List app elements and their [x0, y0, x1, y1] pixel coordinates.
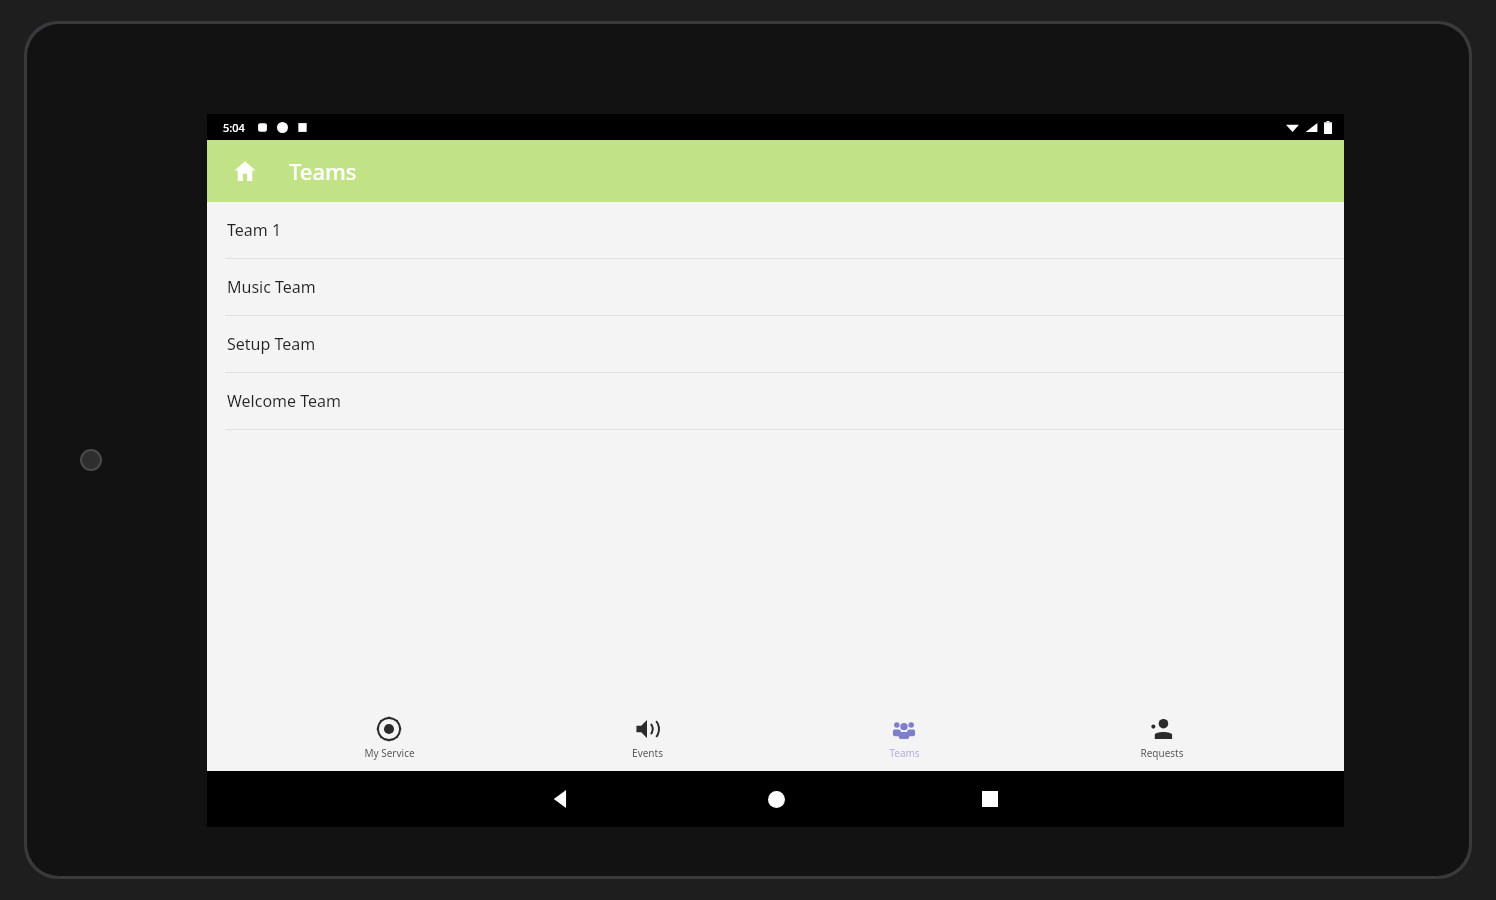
button[interactable]: Music Team	[207, 259, 1344, 315]
staticText: Events	[632, 746, 663, 760]
button[interactable]: Requests	[1087, 705, 1237, 771]
staticText: Welcome Team	[227, 390, 341, 412]
button[interactable]: Team 1	[207, 202, 1344, 258]
staticText: Setup Team	[227, 333, 316, 355]
button[interactable]: Recent apps	[966, 775, 1014, 823]
staticText: Team 1	[227, 219, 282, 241]
staticText: 5:04	[223, 120, 245, 135]
staticText: Music Team	[227, 276, 316, 298]
button[interactable]: Teams	[829, 705, 979, 771]
button[interactable]: Events	[572, 705, 722, 771]
button[interactable]: Back	[537, 775, 585, 823]
button[interactable]: Setup Team	[207, 316, 1344, 372]
staticText: Teams	[889, 746, 920, 760]
button[interactable]: Welcome Team	[207, 373, 1344, 429]
button[interactable]: Home	[752, 775, 800, 823]
staticText: Teams	[289, 156, 357, 186]
staticText: My Service	[364, 746, 415, 760]
staticText: Requests	[1140, 746, 1184, 760]
button[interactable]: Home	[223, 149, 267, 193]
button[interactable]: My Service	[314, 705, 464, 771]
